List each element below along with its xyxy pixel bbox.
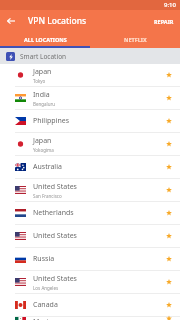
button[interactable]: Japan	[0, 64, 180, 86]
button[interactable]: Netherlands	[0, 202, 180, 224]
button[interactable]: Favorite Canada	[160, 296, 178, 314]
staticText: Russia	[33, 254, 55, 264]
button[interactable]: Smart Location	[0, 48, 180, 64]
staticText: Australia	[33, 162, 62, 172]
button[interactable]: Russia	[0, 248, 180, 270]
staticText: Netherlands	[33, 208, 74, 218]
button[interactable]: Favorite Netherlands	[160, 204, 178, 222]
staticText: NETFLIX	[124, 36, 147, 43]
staticText: Bengaluru	[33, 101, 56, 107]
button[interactable]: Favorite United States	[160, 181, 178, 199]
button[interactable]: Mexico	[0, 317, 180, 320]
staticText: ALL LOCATIONS	[24, 36, 67, 43]
button[interactable]: Back	[0, 10, 22, 32]
staticText: India	[33, 90, 50, 100]
button[interactable]: United States	[0, 225, 180, 247]
button[interactable]: Favorite United States	[160, 227, 178, 245]
button[interactable]: United States	[0, 271, 180, 293]
button[interactable]: Australia	[0, 156, 180, 178]
staticText: Tokyo	[33, 78, 46, 84]
button[interactable]: Favorite United States	[160, 273, 178, 291]
button[interactable]: Favorite Australia	[160, 158, 178, 176]
button[interactable]: ALL LOCATIONS	[0, 32, 90, 46]
button[interactable]: Canada	[0, 294, 180, 316]
button[interactable]: United States	[0, 179, 180, 201]
button[interactable]: Japan	[0, 133, 180, 155]
staticText: VPN Locations	[28, 15, 87, 27]
button[interactable]: India	[0, 87, 180, 109]
staticText: United States	[33, 182, 77, 192]
staticText: United States	[33, 231, 77, 241]
staticText: Canada	[33, 300, 58, 310]
staticText: Smart Location	[20, 52, 67, 61]
staticText: Yokogima	[33, 147, 54, 153]
button[interactable]: Favorite Russia	[160, 250, 178, 268]
staticText: Philippines	[33, 116, 70, 126]
button[interactable]: Favorite Japan	[160, 66, 178, 84]
staticText: Japan	[33, 67, 52, 77]
button[interactable]: Favorite Philippines	[160, 112, 178, 130]
staticText: United States	[33, 274, 77, 284]
staticText: REPAIR	[154, 18, 174, 25]
staticText: Mexico	[33, 317, 57, 320]
button[interactable]: NETFLIX	[90, 32, 180, 46]
button[interactable]: Favorite Japan	[160, 135, 178, 153]
staticText: Japan	[33, 136, 52, 146]
staticText: San Francisco	[33, 193, 62, 199]
staticText: 9:10	[164, 1, 176, 9]
button[interactable]: Favorite Mexico	[160, 317, 178, 320]
button[interactable]: REPAIR	[148, 18, 180, 25]
staticText: Los Angeles	[33, 285, 59, 291]
button[interactable]: Philippines	[0, 110, 180, 132]
button[interactable]: Favorite India	[160, 89, 178, 107]
